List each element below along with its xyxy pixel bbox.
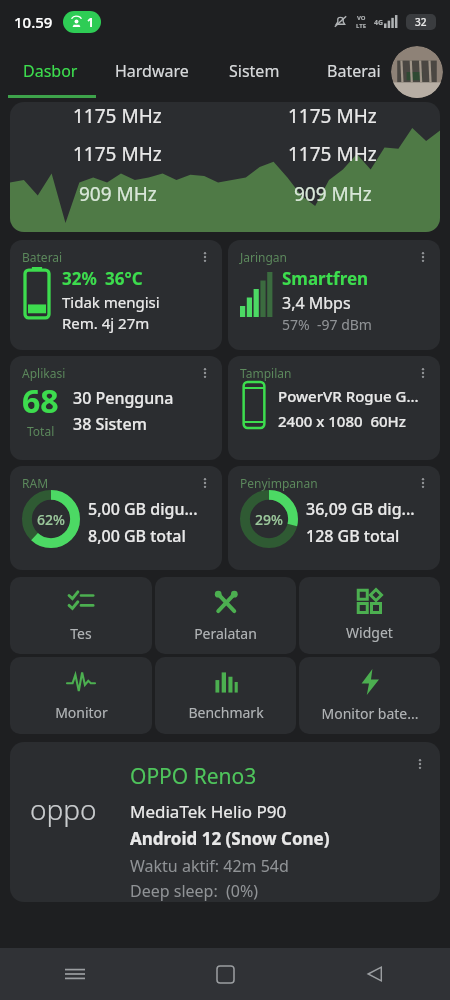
button[interactable]: Widget: [299, 577, 440, 654]
staticText: 128 GB total: [306, 525, 400, 547]
staticText: 32%: [62, 267, 97, 290]
staticText: Monitor bate...: [321, 704, 419, 723]
staticText: 38 Sistem: [73, 413, 147, 435]
staticText: 1175 MHz: [73, 141, 162, 167]
button[interactable]: More options: [194, 472, 216, 494]
button[interactable]: Tes: [10, 577, 152, 654]
staticText: Aplikasi: [22, 365, 66, 381]
staticText: 68: [22, 379, 59, 423]
staticText: Rem. 4j 27m: [62, 313, 150, 333]
staticText: VO: [357, 14, 366, 22]
button[interactable]: More options: [412, 362, 434, 384]
button[interactable]: Tampilan: [228, 356, 440, 460]
button[interactable]: Aplikasi: [10, 356, 222, 460]
staticText: Hardware: [115, 60, 189, 82]
staticText: 1175 MHz: [288, 141, 377, 167]
staticText: 10.59: [14, 12, 53, 32]
staticText: 1: [87, 14, 94, 30]
button[interactable]: Jaringan: [228, 240, 440, 350]
staticText: Peralatan: [194, 624, 257, 643]
staticText: 32: [415, 15, 427, 29]
staticText: Waktu aktif: 42m 54d: [130, 855, 289, 877]
staticText: -97 dBm: [317, 315, 372, 334]
staticText: 909 MHz: [79, 181, 157, 207]
button[interactable]: Hardware: [101, 43, 203, 98]
staticText: Tampilan: [240, 365, 292, 381]
staticText: OPPO Reno3: [130, 762, 257, 791]
staticText: 1175 MHz: [73, 103, 162, 129]
staticText: 36°C: [105, 267, 143, 290]
staticText: Benchmark: [188, 703, 264, 722]
button[interactable]: Peralatan: [155, 577, 296, 654]
staticText: Total: [27, 423, 55, 439]
staticText: Tes: [70, 624, 92, 643]
staticText: Baterai: [22, 249, 63, 265]
button[interactable]: Monitor bate...: [299, 657, 440, 734]
staticText: RAM: [22, 475, 49, 491]
button[interactable]: More options: [408, 752, 432, 776]
button[interactable]: Recent apps: [0, 948, 150, 1000]
staticText: Sistem: [229, 60, 280, 82]
button[interactable]: Sistem: [203, 43, 305, 98]
staticText: Smartfren: [282, 267, 369, 290]
staticText: PowerVR Rogue G...: [278, 386, 419, 406]
button[interactable]: Dasbor: [0, 43, 101, 98]
staticText: Baterai: [327, 60, 381, 82]
button[interactable]: Benchmark: [155, 657, 296, 734]
staticText: 57%: [282, 315, 310, 334]
button[interactable]: RAM: [10, 466, 222, 570]
staticText: Penyimpanan: [240, 475, 318, 491]
staticText: MediaTek Helio P90: [130, 800, 287, 823]
button[interactable]: Monitor: [10, 657, 152, 734]
staticText: 36,09 GB dig...: [306, 498, 415, 520]
button[interactable]: More options: [10, 742, 440, 902]
staticText: 30 Pengguna: [73, 387, 174, 409]
staticText: oppo: [30, 790, 97, 828]
staticText: Deep sleep: (0%): [130, 880, 259, 902]
staticText: 3,4 Mbps: [282, 292, 351, 314]
button[interactable]: More options: [412, 472, 434, 494]
staticText: Tidak mengisi: [62, 292, 160, 312]
button[interactable]: Home: [150, 948, 300, 1000]
button[interactable]: Back: [300, 948, 450, 1000]
staticText: Widget: [346, 623, 393, 642]
staticText: Dasbor: [23, 60, 78, 82]
staticText: 29%: [255, 510, 283, 529]
button[interactable]: Profile: [391, 46, 443, 98]
staticText: 4G: [374, 18, 384, 28]
button[interactable]: Baterai: [10, 240, 222, 350]
staticText: Android 12 (Snow Cone): [130, 827, 330, 850]
staticText: 1175 MHz: [288, 103, 377, 129]
button[interactable]: Baterai: [305, 43, 402, 98]
staticText: 8,00 GB total: [88, 525, 186, 547]
button[interactable]: 1175 MHz: [10, 102, 440, 232]
staticText: Jaringan: [240, 249, 288, 265]
button[interactable]: More options: [412, 246, 434, 268]
staticText: 2400 x 1080 60Hz: [278, 411, 406, 431]
staticText: 62%: [37, 510, 65, 529]
staticText: Monitor: [55, 703, 108, 722]
button[interactable]: More options: [194, 362, 216, 384]
button[interactable]: More options: [194, 246, 216, 268]
staticText: 5,00 GB digu...: [88, 498, 198, 520]
button[interactable]: Penyimpanan: [228, 466, 440, 570]
staticText: LTE: [356, 22, 367, 30]
staticText: 909 MHz: [294, 181, 372, 207]
